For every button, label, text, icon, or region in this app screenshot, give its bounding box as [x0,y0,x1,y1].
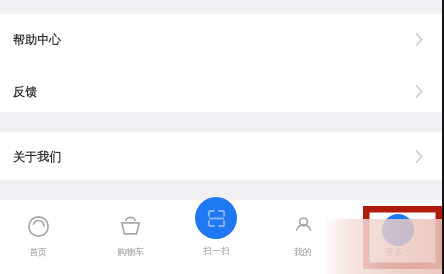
button[interactable]: 首页 [8,215,68,257]
other: 首页 [27,215,50,238]
staticText: 帮助中心 [13,32,61,47]
button[interactable]: 反馈 [0,65,444,112]
button[interactable]: 扫一扫 [186,197,246,256]
staticText: 我的 [294,246,312,257]
button[interactable]: 帮助中心 [0,14,444,65]
other: 购物车 [119,215,142,238]
button[interactable]: 我的 [273,215,333,257]
staticText: 首页 [29,246,47,257]
staticText: 关于我们 [13,149,61,164]
other: 扫一扫 [195,197,237,239]
staticText: 购物车 [117,246,144,257]
staticText: 反馈 [13,84,37,99]
other: 我的 [292,215,315,238]
button[interactable]: 购物车 [100,215,160,257]
other: 更多 [383,215,406,238]
button[interactable]: 更多 [364,215,424,257]
staticText: 更多 [385,246,403,257]
staticText: 扫一扫 [203,245,230,256]
button[interactable]: 关于我们 [0,132,444,180]
